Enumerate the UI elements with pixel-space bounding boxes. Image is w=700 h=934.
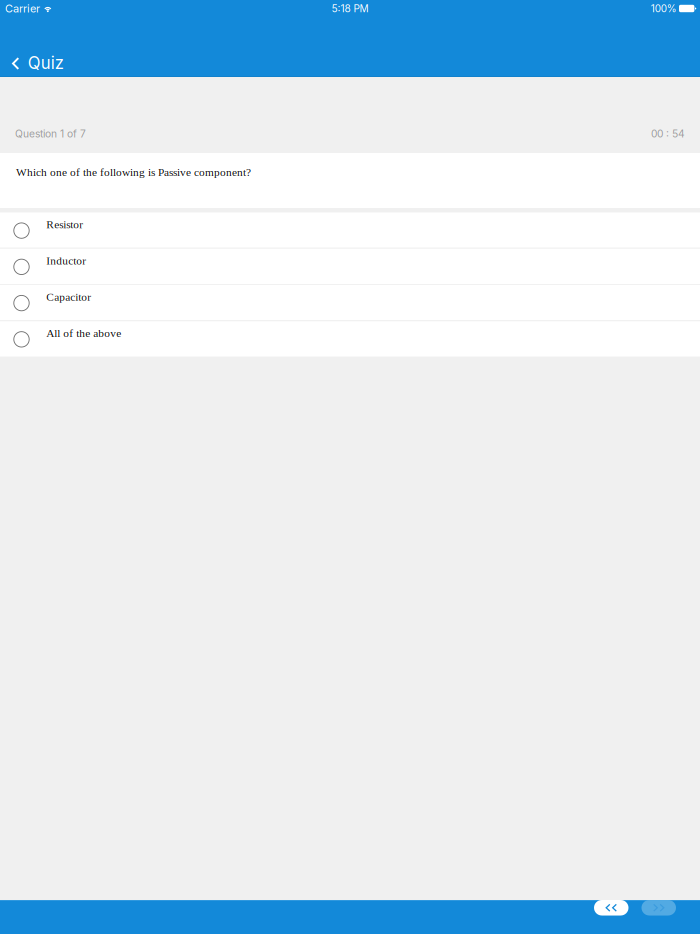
staticText: 5:18 PM xyxy=(331,2,368,15)
button[interactable]: Resistor xyxy=(0,212,700,248)
staticText: 00 : 54 xyxy=(651,128,685,140)
staticText: Quiz xyxy=(28,53,64,73)
staticText: Carrier xyxy=(5,2,40,15)
staticText: Question 1 of 7 xyxy=(15,128,86,140)
staticText: Capacitor xyxy=(46,291,91,303)
button[interactable]: Previous question xyxy=(594,900,628,915)
button[interactable]: Capacitor xyxy=(0,285,700,320)
button[interactable]: Quiz xyxy=(0,47,78,77)
staticText: All of the above xyxy=(46,327,121,339)
button[interactable]: Inductor xyxy=(0,249,700,284)
button[interactable]: Next question xyxy=(641,900,676,915)
staticText: Which one of the following is Passive co… xyxy=(16,166,251,178)
button[interactable]: All of the above xyxy=(0,321,700,356)
staticText: Inductor xyxy=(46,254,86,267)
staticText: 100% xyxy=(651,2,677,15)
staticText: Resistor xyxy=(46,218,83,231)
